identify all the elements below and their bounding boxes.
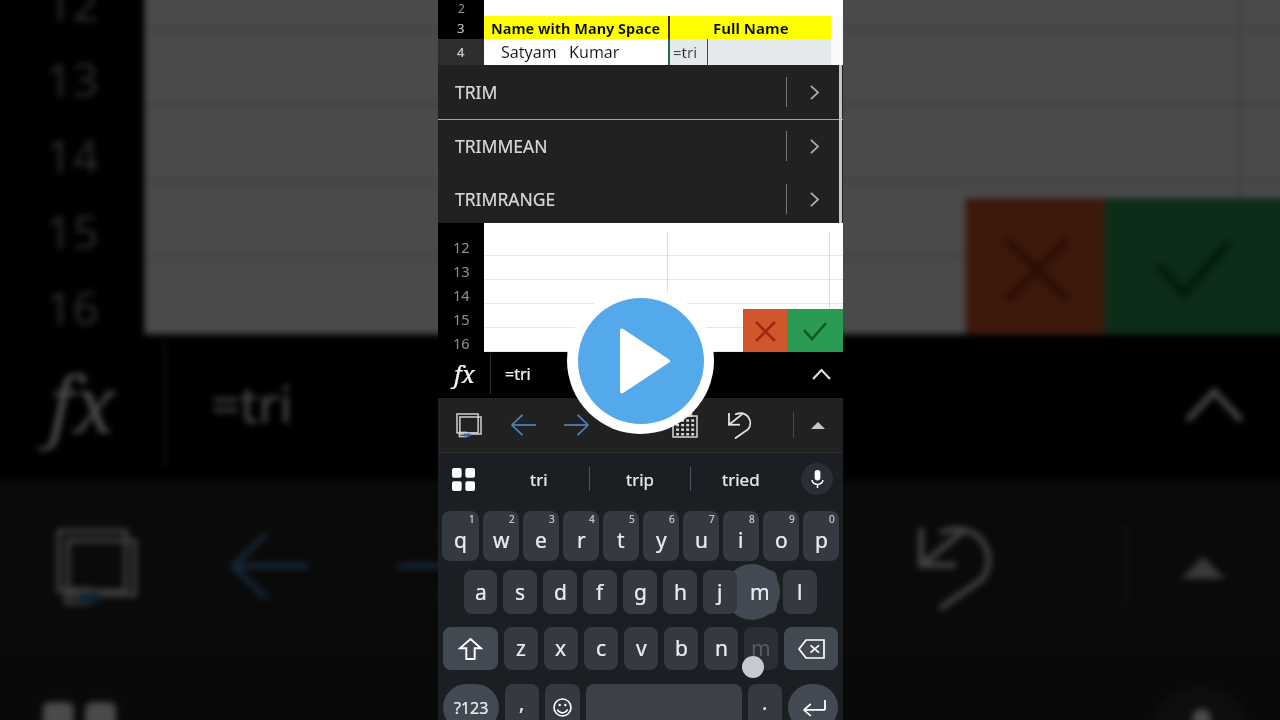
button[interactable]: Play: [567, 287, 714, 434]
staticText: 0: [829, 512, 835, 526]
staticText: 12: [453, 237, 470, 257]
staticText: t: [617, 526, 625, 555]
button[interactable]: Enter: [788, 684, 838, 720]
staticText: d: [554, 578, 567, 607]
button[interactable]: b: [664, 627, 698, 670]
staticText: x: [555, 634, 567, 663]
staticText: 6: [669, 512, 675, 526]
staticText: 13: [46, 46, 100, 110]
button[interactable]: TRIMMEAN: [438, 119, 843, 173]
staticText: i: [738, 526, 744, 555]
button[interactable]: Expand ribbon: [798, 398, 838, 452]
staticText: ,: [519, 689, 525, 716]
staticText: l: [797, 578, 803, 607]
button[interactable]: x: [544, 627, 578, 670]
staticText: z: [516, 634, 526, 663]
staticText: g: [634, 578, 647, 607]
staticText: 3: [457, 19, 465, 37]
button[interactable]: Keyboard toolbar: [438, 453, 488, 505]
staticText: 2: [458, 0, 465, 16]
button[interactable]: Voice input: [791, 453, 843, 505]
staticText: 7: [709, 512, 715, 526]
staticText: 4: [457, 43, 465, 61]
staticText: Name with Many Space: [491, 18, 661, 38]
button[interactable]: Emoji: [545, 684, 580, 720]
staticText: j: [717, 578, 723, 607]
button[interactable]: m: [743, 570, 777, 614]
button[interactable]: Undo: [719, 411, 760, 438]
staticText: 8: [749, 512, 755, 526]
staticText: q: [454, 526, 467, 555]
button[interactable]: i: [723, 511, 759, 561]
staticText: p: [815, 526, 828, 555]
button[interactable]: .: [748, 684, 782, 720]
button[interactable]: y: [643, 511, 679, 561]
button[interactable]: ?123: [443, 684, 499, 720]
button[interactable]: o: [763, 511, 799, 561]
button[interactable]: View: [444, 398, 493, 452]
button[interactable]: Previous: [499, 398, 547, 452]
staticText: 15: [46, 198, 100, 262]
staticText: tri: [530, 468, 548, 491]
button[interactable]: n: [704, 627, 738, 670]
button[interactable]: f: [583, 570, 617, 614]
button[interactable]: Backspace: [784, 627, 838, 670]
staticText: fx: [454, 357, 475, 390]
staticText: 14: [46, 122, 100, 186]
staticText: m: [751, 634, 771, 663]
button[interactable]: j: [703, 570, 737, 614]
staticText: TRIMRANGE: [455, 187, 556, 211]
staticText: 13: [453, 261, 470, 281]
button[interactable]: tried: [691, 453, 791, 505]
button[interactable]: trip: [590, 453, 690, 505]
button[interactable]: h: [663, 570, 697, 614]
staticText: 4: [589, 512, 595, 526]
button[interactable]: d: [543, 570, 577, 614]
button[interactable]: w: [483, 511, 519, 561]
button[interactable]: z: [504, 627, 538, 670]
button[interactable]: ,: [505, 684, 539, 720]
button[interactable]: tri: [488, 453, 589, 505]
button[interactable]: p: [803, 511, 839, 561]
staticText: tried: [722, 468, 760, 491]
button[interactable]: Next: [552, 398, 600, 452]
button[interactable]: TRIMRANGE: [438, 172, 843, 226]
button[interactable]: Collapse formula bar: [799, 352, 843, 396]
staticText: r: [577, 526, 586, 555]
button[interactable]: a: [464, 570, 497, 614]
staticText: Satyam Kumar: [501, 41, 620, 63]
button[interactable]: q: [442, 511, 479, 561]
button[interactable]: s: [503, 570, 537, 614]
staticText: e: [535, 526, 547, 555]
button[interactable]: Accept: [787, 309, 843, 353]
staticText: y: [656, 526, 667, 555]
staticText: fx: [49, 350, 116, 455]
staticText: f: [596, 578, 604, 607]
staticText: 16: [46, 274, 100, 338]
staticText: a: [475, 578, 487, 607]
button[interactable]: e: [523, 511, 559, 561]
staticText: 14: [453, 285, 470, 305]
staticText: =tri: [673, 42, 698, 62]
button[interactable]: t: [603, 511, 639, 561]
staticText: n: [715, 634, 728, 663]
button[interactable]: TRIM: [438, 65, 843, 119]
staticText: 16: [453, 333, 470, 353]
button[interactable]: Cancel: [743, 309, 787, 353]
button[interactable]: m: [744, 627, 778, 670]
button[interactable]: u: [683, 511, 719, 561]
staticText: =tri: [505, 363, 531, 385]
button[interactable]: c: [584, 627, 618, 670]
button[interactable]: Number pad: [661, 398, 709, 452]
button[interactable]: r: [563, 511, 599, 561]
staticText: 12: [46, 0, 100, 33]
button[interactable]: Shift: [443, 627, 498, 670]
button[interactable]: l: [783, 570, 817, 614]
button[interactable]: v: [624, 627, 658, 670]
button[interactable]: g: [623, 570, 657, 614]
staticText: ?123: [454, 697, 489, 719]
